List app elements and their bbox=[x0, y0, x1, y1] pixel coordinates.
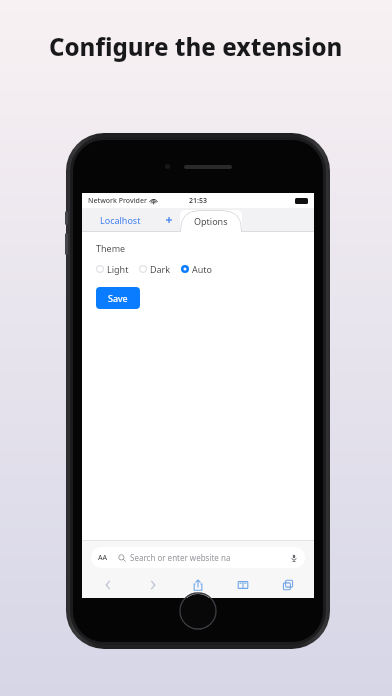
button[interactable]: Auto bbox=[181, 261, 213, 277]
staticText: Search or enter website na bbox=[130, 552, 290, 563]
staticText: Dark bbox=[150, 263, 171, 275]
staticText: AA bbox=[98, 553, 108, 563]
button[interactable]: Share bbox=[182, 574, 214, 596]
staticText: Theme bbox=[96, 242, 126, 254]
button[interactable]: Light bbox=[96, 261, 129, 277]
button[interactable]: Home bbox=[178, 591, 218, 631]
button[interactable]: Options bbox=[180, 208, 242, 232]
button[interactable]: Localhost bbox=[82, 208, 158, 232]
button[interactable]: AA bbox=[91, 547, 305, 568]
staticText: Localhost bbox=[100, 214, 141, 226]
staticText: Configure the extension bbox=[49, 30, 343, 63]
button[interactable]: Dark bbox=[139, 261, 171, 277]
button[interactable]: Bookmarks bbox=[227, 574, 259, 596]
staticText: Network Provider bbox=[88, 196, 147, 206]
button[interactable]: New tab bbox=[158, 208, 180, 232]
button[interactable]: Tabs bbox=[272, 574, 304, 596]
staticText: Auto bbox=[192, 263, 213, 275]
staticText: Save bbox=[108, 292, 128, 304]
button[interactable]: Back bbox=[92, 574, 124, 596]
button[interactable]: Save bbox=[96, 287, 140, 309]
staticText: Light bbox=[107, 263, 129, 275]
staticText: 21:53 bbox=[189, 196, 207, 206]
button[interactable]: Forward bbox=[137, 574, 169, 596]
staticText: Options bbox=[194, 215, 228, 227]
